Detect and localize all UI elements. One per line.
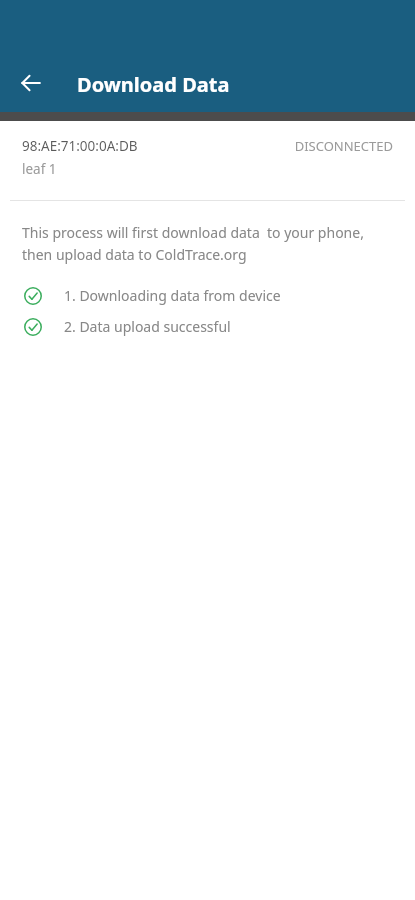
staticText: DISCONNECTED	[294, 137, 393, 155]
staticText: 1. Downloading data from device	[64, 286, 281, 305]
staticText: 98:AE:71:00:0A:DB	[22, 137, 138, 155]
button[interactable]: 1. Downloading data from device	[0, 286, 415, 305]
staticText: Download Data	[77, 71, 230, 98]
staticText: then upload data to ColdTrace.org	[22, 245, 247, 264]
button[interactable]: Back	[7, 59, 55, 107]
button[interactable]: 2. Data upload successful	[0, 317, 415, 336]
staticText: 2. Data upload successful	[64, 317, 231, 336]
staticText: This process will first download data to…	[22, 223, 364, 242]
button[interactable]: 98:AE:71:00:0A:DB	[0, 121, 415, 186]
staticText: leaf 1	[22, 160, 57, 178]
